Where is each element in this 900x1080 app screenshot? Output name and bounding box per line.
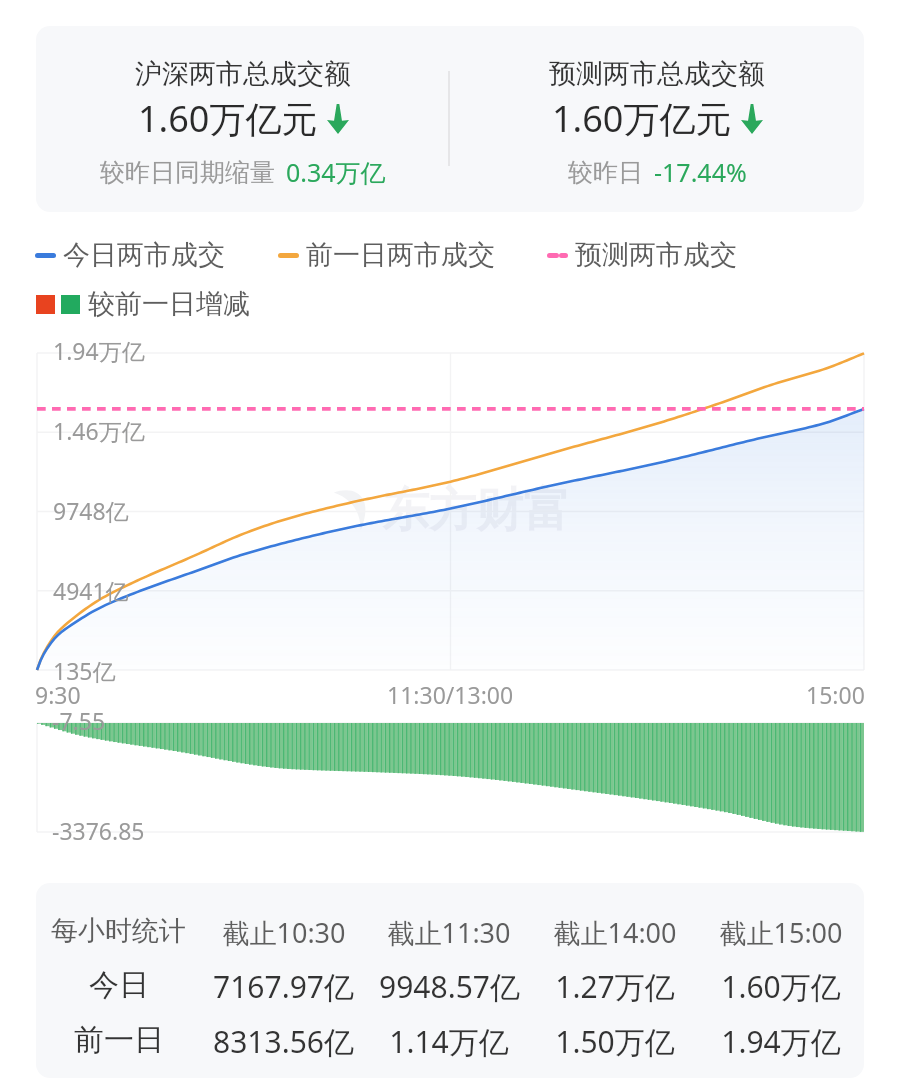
staticText: 9:30 (35, 679, 81, 710)
button[interactable]: 较前一日增减 (36, 287, 250, 321)
button[interactable]: 今日两市成交 (36, 238, 225, 272)
staticText: 前一日 (74, 1021, 164, 1059)
staticText: 9748亿 (53, 495, 129, 526)
button[interactable]: 前一日两市成交 (279, 238, 495, 272)
button[interactable]: 今日 (36, 966, 864, 1007)
button[interactable]: 两市成交额走势图 (36, 345, 865, 840)
staticText: 较昨日同期缩量 (100, 157, 275, 188)
staticText: 1.14万亿 (389, 1021, 509, 1062)
button[interactable]: 预测两市成交 (548, 238, 737, 272)
staticText: 今日两市成交 (63, 238, 225, 272)
staticText: 1.50万亿 (555, 1021, 675, 1062)
staticText: 预测两市成交 (575, 238, 737, 272)
staticText: 4941亿 (53, 575, 129, 606)
staticText: 今日 (89, 966, 149, 1004)
staticText: 截止15:00 (719, 914, 843, 951)
staticText: 1.60万亿 (721, 966, 841, 1007)
staticText: -3376.85 (52, 815, 145, 846)
staticText: 1.60万亿元 (138, 94, 318, 143)
staticText: 7167.97亿 (213, 966, 354, 1007)
staticText: 较昨日 (568, 157, 643, 188)
button[interactable]: 每小时统计 (36, 883, 864, 1078)
staticText: 11:30/13:00 (387, 679, 514, 710)
staticText: 0.34万亿 (286, 155, 386, 189)
staticText: 东方财富 (382, 481, 570, 540)
staticText: 截止14:00 (553, 914, 677, 951)
staticText: 截止10:30 (222, 914, 346, 951)
staticText: 较前一日增减 (88, 287, 250, 321)
staticText: 9948.57亿 (379, 966, 520, 1007)
staticText: 1.94万亿 (53, 335, 145, 366)
button[interactable]: 前一日 (36, 1021, 864, 1062)
button[interactable]: 每小时统计 (36, 914, 864, 951)
staticText: 沪深两市总成交额 (135, 57, 351, 91)
staticText: 1.46万亿 (53, 415, 145, 446)
button[interactable]: 沪深两市总成交额 (36, 26, 864, 212)
staticText: 1.27万亿 (555, 966, 675, 1007)
staticText: 前一日两市成交 (306, 238, 495, 272)
staticText: 1.94万亿 (721, 1021, 841, 1062)
staticText: 15:00 (806, 679, 865, 710)
staticText: -7.55 (52, 705, 106, 736)
button[interactable]: 预测两市总成交额 (450, 26, 864, 212)
staticText: 预测两市总成交额 (549, 57, 765, 91)
button[interactable]: 沪深两市总成交额 (36, 26, 450, 212)
staticText: 8313.56亿 (213, 1021, 354, 1062)
staticText: 截止11:30 (387, 914, 511, 951)
staticText: 1.60万亿元 (552, 94, 732, 143)
staticText: 每小时统计 (51, 914, 186, 948)
staticText: -17.44% (654, 155, 747, 189)
staticText: 135亿 (53, 655, 116, 686)
